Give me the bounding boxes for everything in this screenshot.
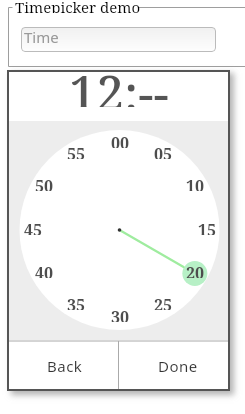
staticText: 35 [67,294,86,310]
staticText: Timepicker demo [15,0,141,13]
button[interactable]: 20 [180,262,210,278]
staticText: 45 [24,219,43,235]
staticText: 05 [154,143,173,159]
staticText: 12:-- [69,59,169,107]
button[interactable]: 05 [148,143,178,159]
button[interactable]: 35 [61,294,91,310]
staticText: 15 [198,219,217,235]
staticText: Done [158,356,198,376]
staticText: 55 [67,143,86,159]
button[interactable]: Back [9,342,119,390]
button[interactable]: 15 [192,219,222,235]
staticText: 00 [111,132,130,148]
staticText: 10 [186,175,205,191]
staticText: 40 [35,262,54,278]
button[interactable]: 25 [148,294,178,310]
button[interactable]: 50 [29,175,59,191]
button[interactable]: 10 [180,175,210,191]
staticText: 30 [111,306,130,322]
button[interactable]: 45 [18,219,48,235]
staticText: Time [24,27,59,43]
button[interactable]: 40 [29,262,59,278]
button[interactable]: 30 [105,306,135,322]
staticText: 20 [186,262,205,278]
staticText: 50 [35,175,54,191]
button[interactable]: Time [21,27,216,52]
button[interactable]: 00 [105,132,135,148]
button[interactable]: 55 [61,143,91,159]
button[interactable]: Done [119,342,229,390]
staticText: 25 [154,294,173,310]
staticText: Back [47,356,83,376]
